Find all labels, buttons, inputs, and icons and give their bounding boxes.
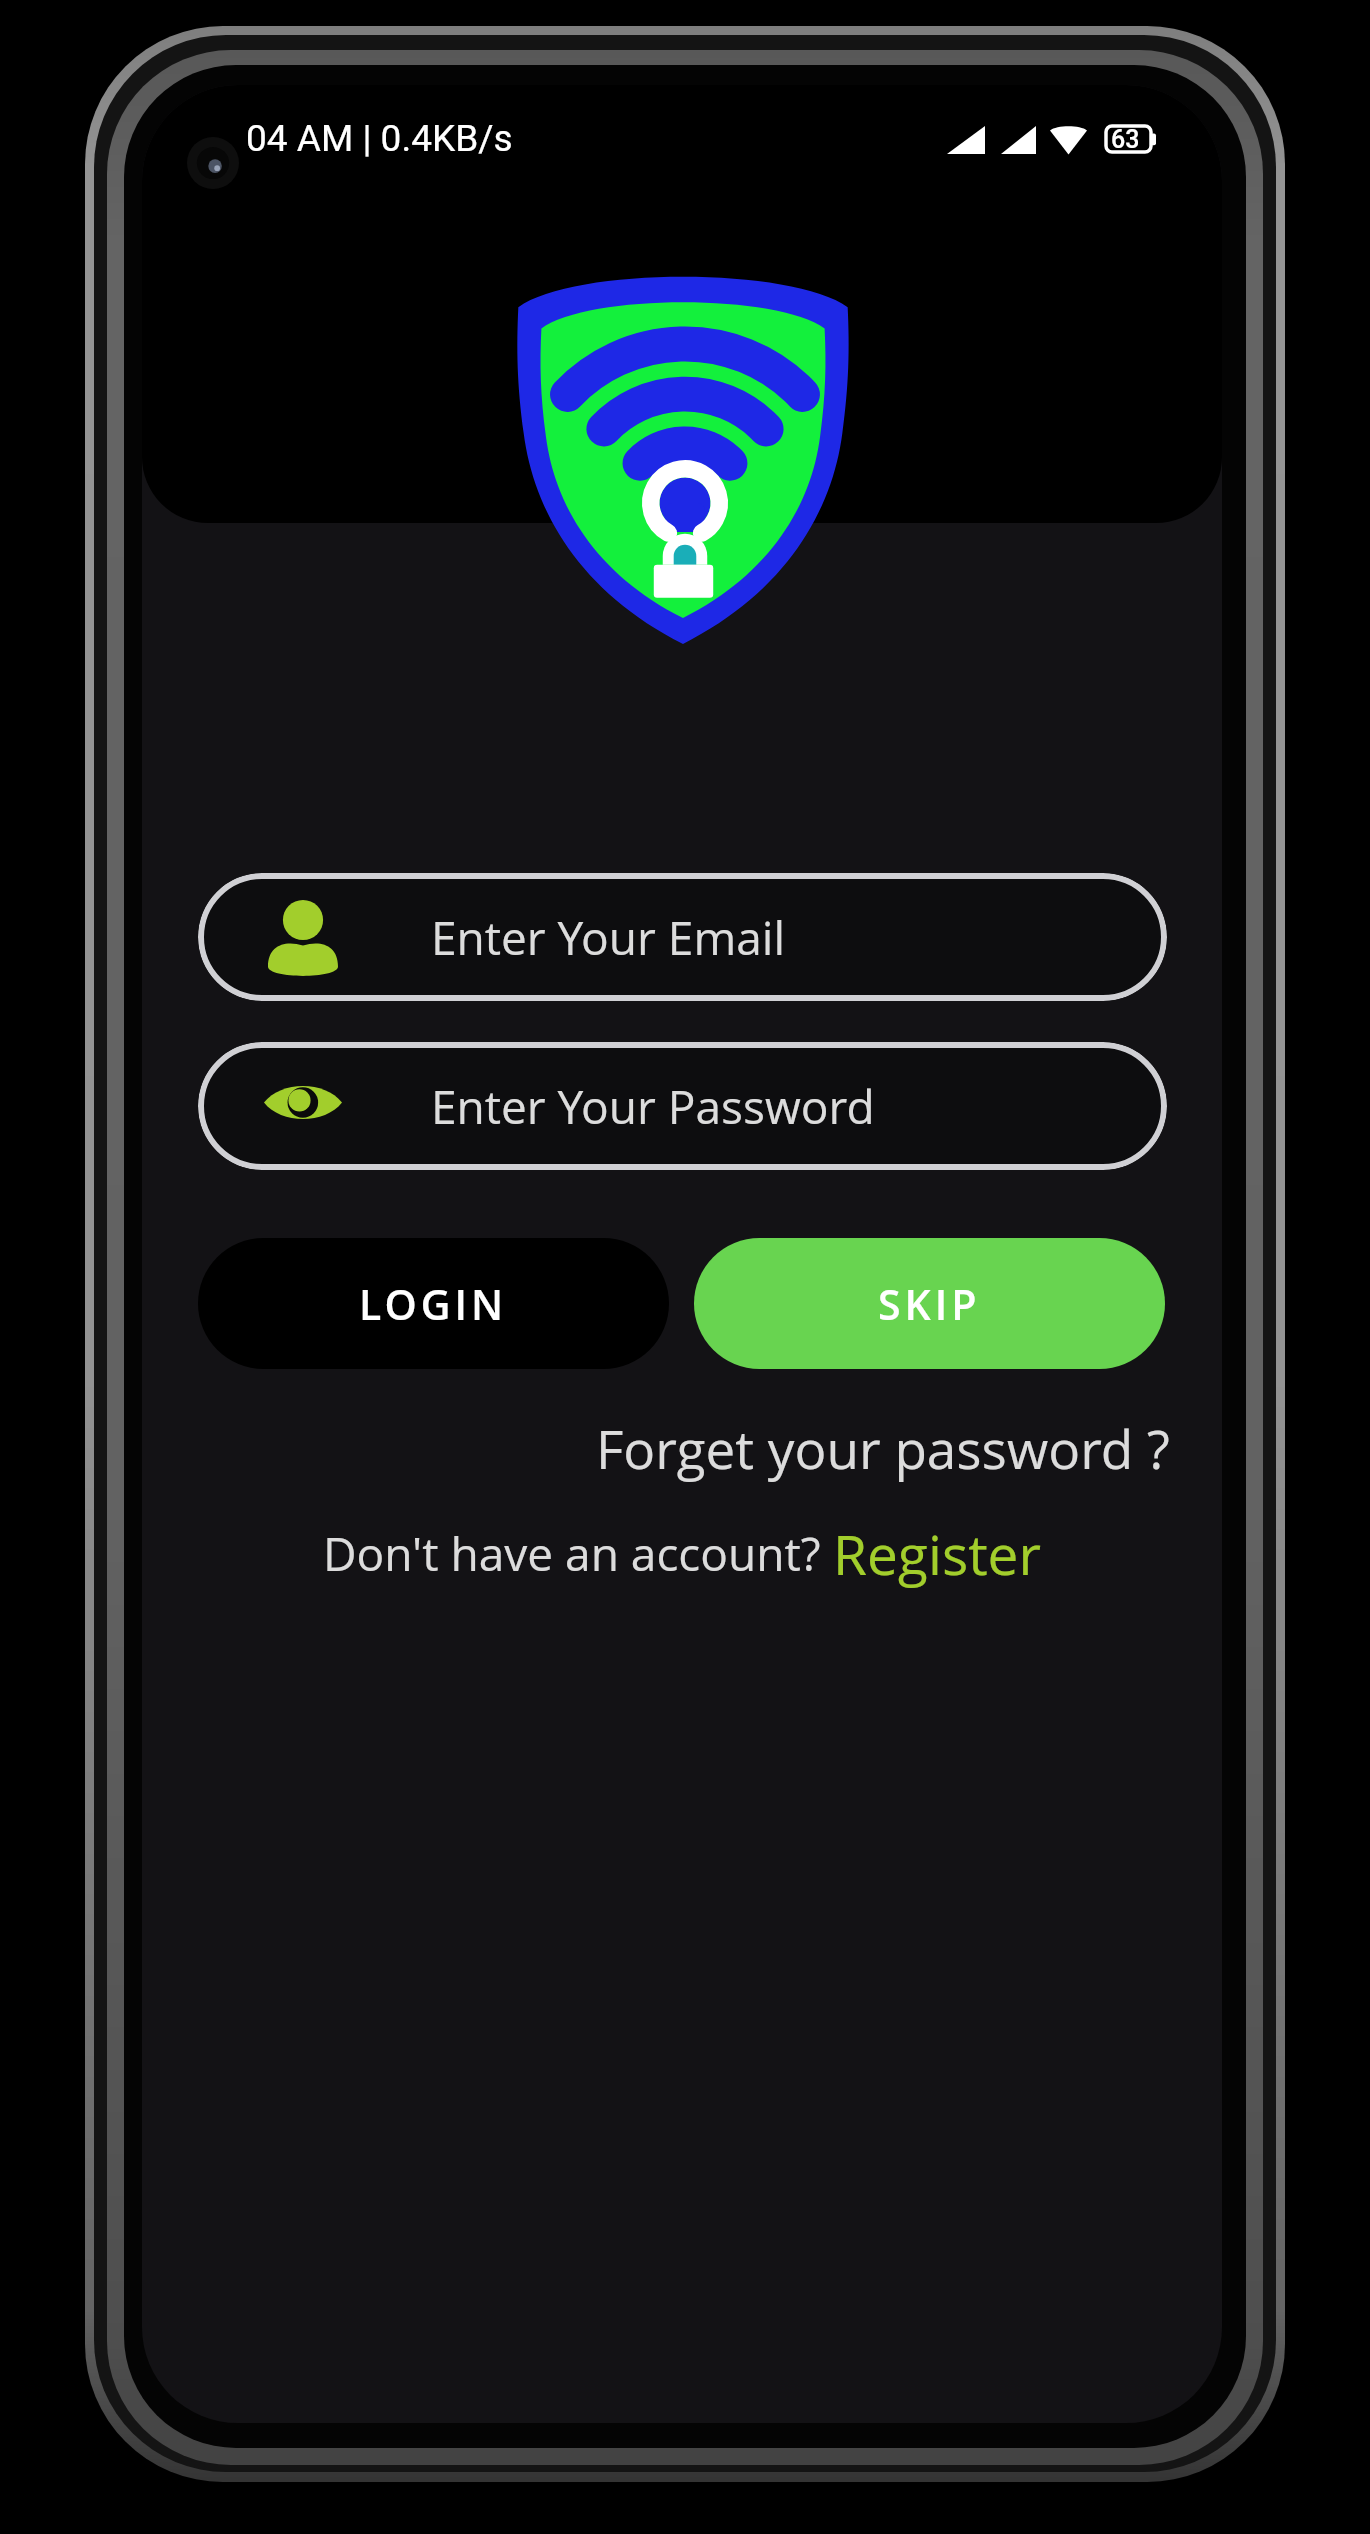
- button[interactable]: Show password: [198, 1042, 1167, 1170]
- button[interactable]: Email: [198, 873, 1167, 1001]
- staticText: Don't have an account?: [323, 1522, 821, 1585]
- staticText: Enter Your Password: [431, 1075, 875, 1138]
- button[interactable]: LOGIN: [198, 1238, 669, 1369]
- staticText: Enter Your Email: [431, 906, 786, 969]
- staticText: 63: [1111, 125, 1140, 154]
- button[interactable]: Show password: [264, 1082, 342, 1123]
- other: Email: [268, 900, 338, 976]
- button[interactable]: SKIP: [694, 1238, 1165, 1369]
- staticText: Forget your password ?: [596, 1412, 1170, 1484]
- staticText: Register: [833, 1516, 1041, 1591]
- staticText: SKIP: [878, 1276, 981, 1332]
- staticText: 04 AM | 0.4KB/s: [246, 117, 513, 160]
- button[interactable]: Register: [833, 1516, 1041, 1591]
- staticText: LOGIN: [359, 1276, 508, 1332]
- button[interactable]: Forget your password ?: [142, 1412, 1170, 1484]
